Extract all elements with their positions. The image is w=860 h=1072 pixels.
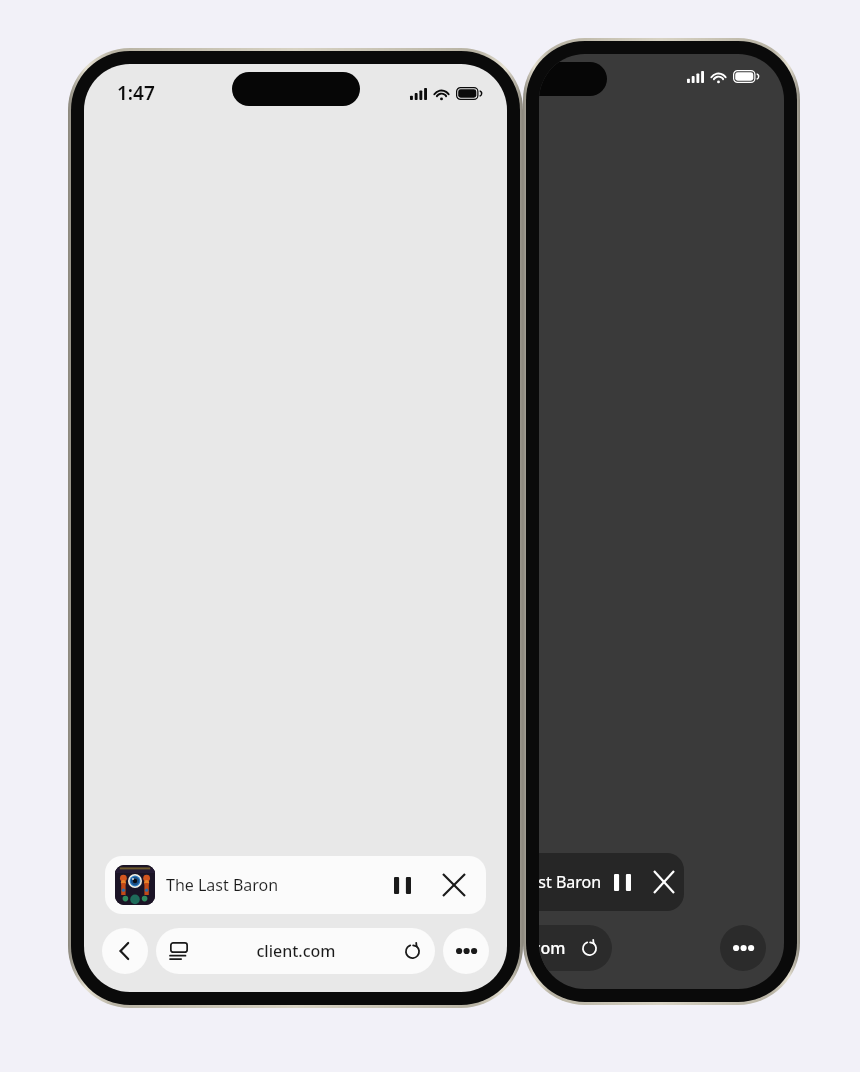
button[interactable]: Back — [102, 928, 148, 974]
button[interactable]: client.com — [539, 925, 612, 971]
staticText: The Last Baron — [539, 871, 602, 893]
button[interactable]: Pause — [602, 862, 642, 902]
staticText: client.com — [539, 937, 581, 959]
button[interactable]: The Last Baron — [539, 853, 684, 911]
button[interactable]: client.com — [156, 928, 435, 974]
button[interactable]: More — [443, 928, 489, 974]
staticText: The Last Baron — [166, 874, 279, 896]
staticText: 1:47 — [117, 80, 155, 106]
button[interactable]: Close — [434, 865, 474, 905]
button[interactable]: Close — [654, 862, 674, 902]
staticText: client.com — [188, 940, 404, 962]
button[interactable]: Pause — [382, 865, 422, 905]
button[interactable]: More — [720, 925, 766, 971]
button[interactable]: The Last Baron — [105, 856, 486, 914]
